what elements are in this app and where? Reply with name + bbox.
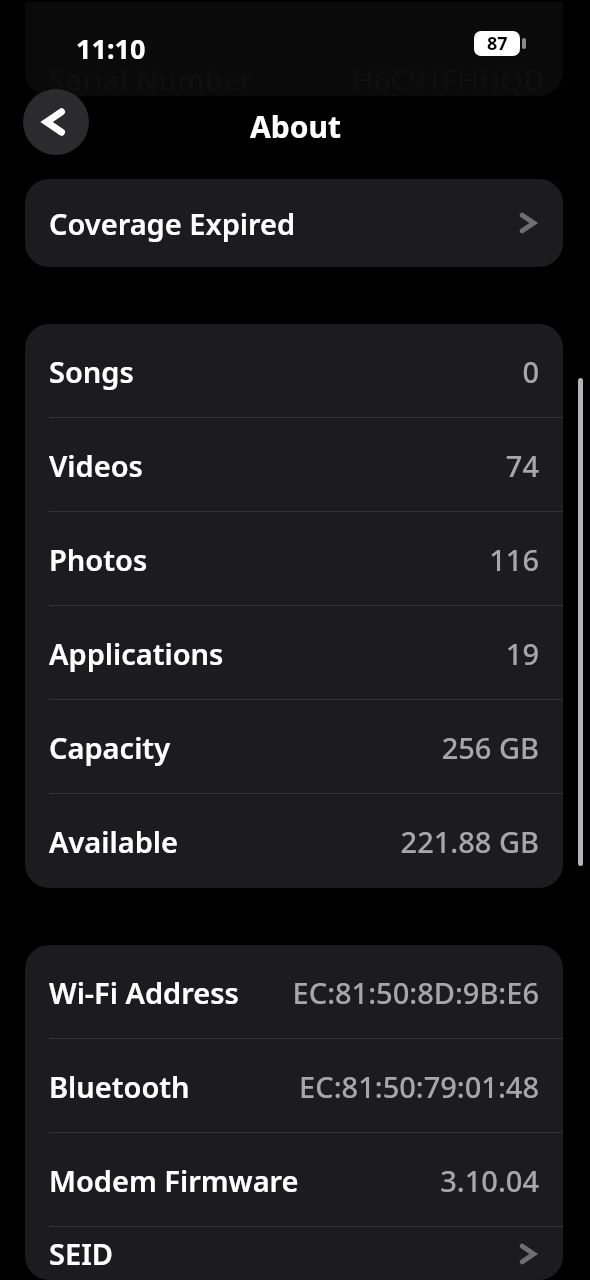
button[interactable]: Modem Firmware — [25, 1133, 563, 1227]
staticText: Songs — [49, 352, 134, 391]
button[interactable]: Capacity — [25, 700, 563, 794]
staticText: Available — [49, 822, 179, 861]
button[interactable]: Available — [25, 794, 563, 888]
staticText: Modem Firmware — [49, 1161, 299, 1200]
button[interactable]: Photos — [25, 512, 563, 606]
staticText: 3.10.04 — [440, 1161, 539, 1200]
button[interactable]: Coverage Expired — [25, 179, 563, 267]
staticText: 116 — [489, 540, 539, 579]
staticText: 74 — [505, 446, 539, 485]
button[interactable]: Songs — [25, 324, 563, 418]
staticText: Serial Number — [49, 60, 253, 99]
button[interactable]: Applications — [25, 606, 563, 700]
button[interactable]: Bluetooth — [25, 1039, 563, 1133]
staticText: Bluetooth — [49, 1067, 190, 1106]
staticText: 0 — [522, 352, 539, 391]
staticText: Coverage Expired — [49, 204, 296, 243]
button[interactable]: Back — [23, 89, 89, 155]
staticText: H6C91FHHQD — [352, 60, 545, 99]
staticText: Wi-Fi Address — [49, 973, 239, 1012]
staticText: EC:81:50:8D:9B:E6 — [292, 973, 539, 1012]
button[interactable]: Wi-Fi Address — [25, 945, 563, 1039]
staticText: 11:10 — [76, 30, 146, 67]
staticText: Capacity — [49, 728, 171, 767]
staticText: 19 — [505, 634, 539, 673]
staticText: About — [250, 106, 341, 147]
button[interactable]: Videos — [25, 418, 563, 512]
staticText: EC:81:50:79:01:48 — [299, 1067, 539, 1106]
button[interactable]: SEID — [25, 1227, 563, 1280]
staticText: 221.88 GB — [400, 822, 539, 861]
staticText: 256 GB — [441, 728, 539, 767]
staticText: Videos — [49, 446, 143, 485]
staticText: 87 — [487, 31, 508, 56]
staticText: Photos — [49, 540, 148, 579]
staticText: Applications — [49, 634, 224, 673]
staticText: SEID — [49, 1234, 114, 1273]
